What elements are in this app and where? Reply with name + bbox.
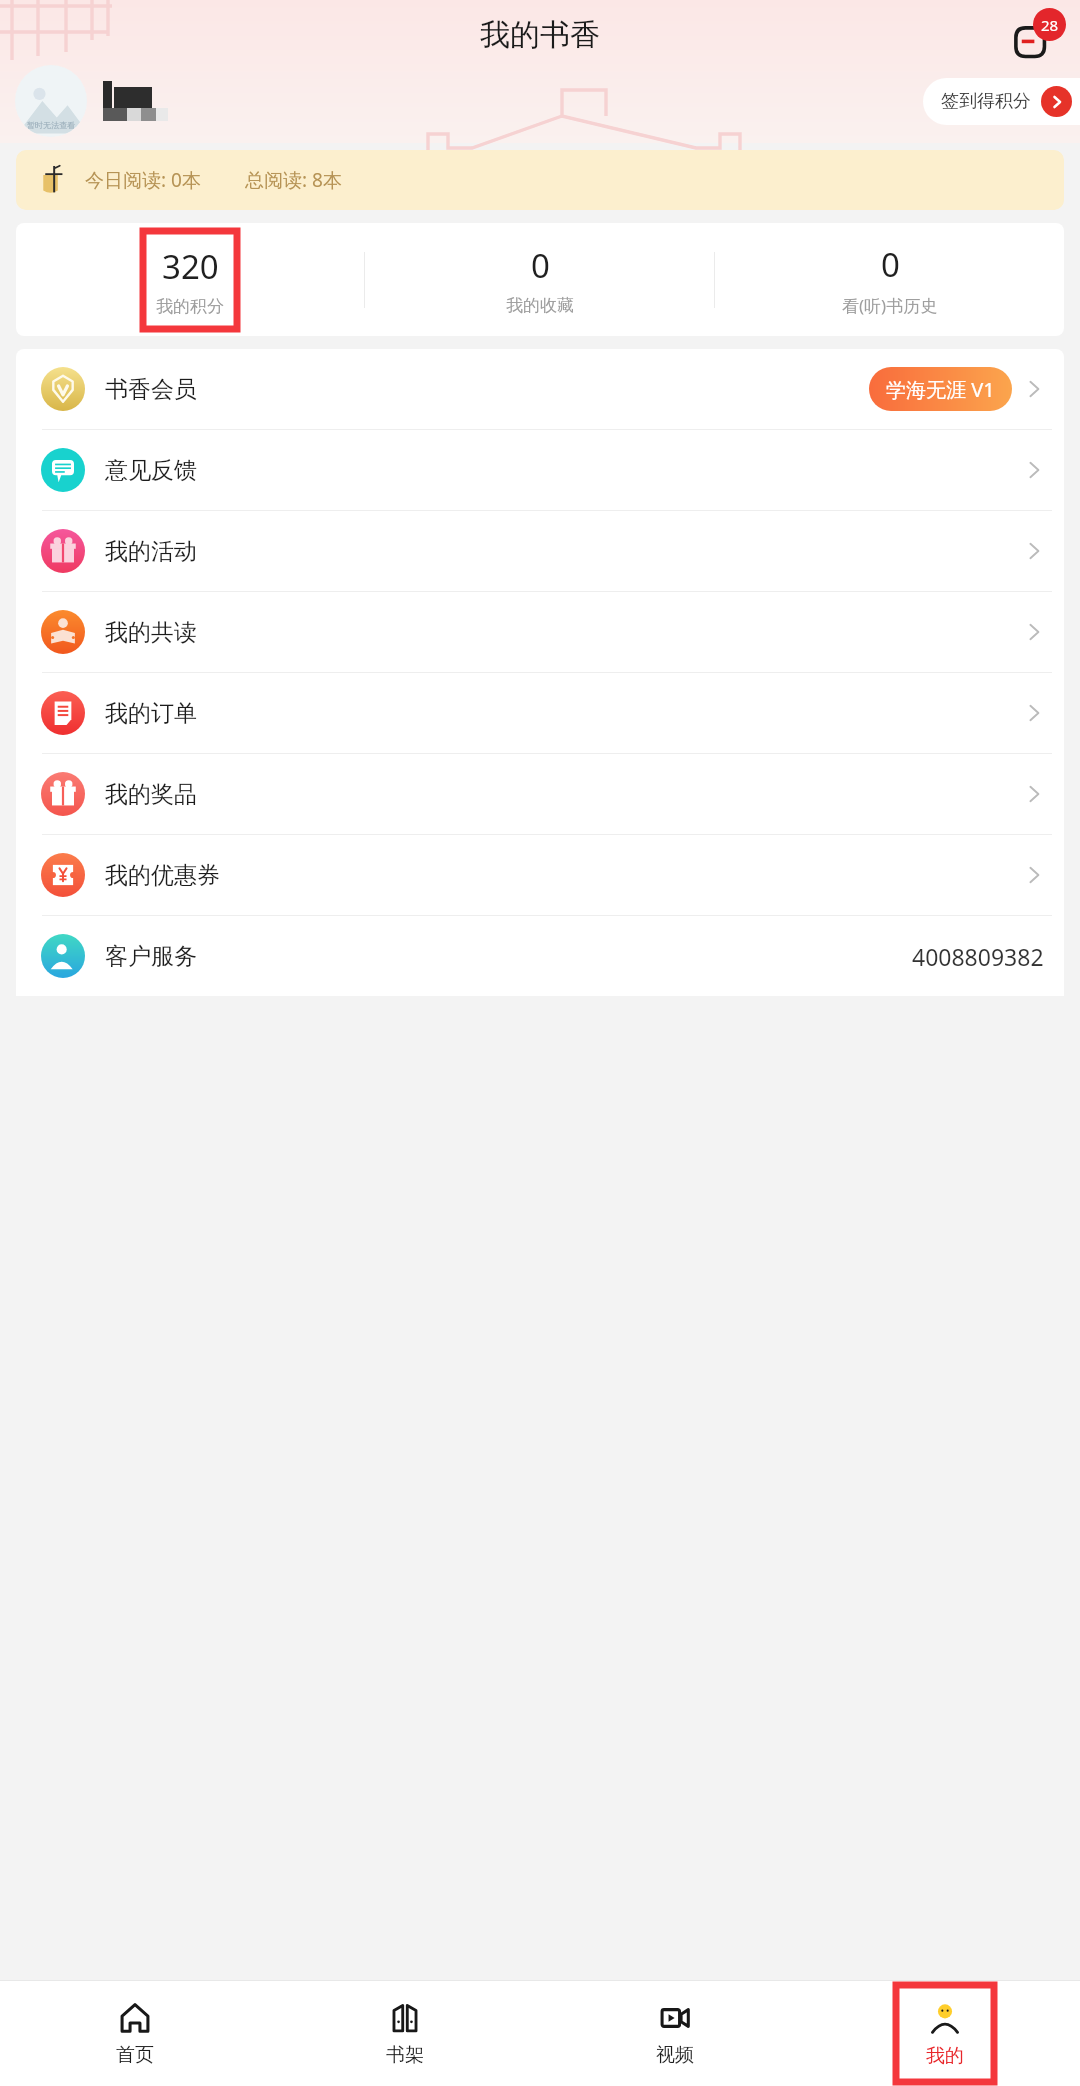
button[interactable]: 意见反馈 (16, 430, 1064, 510)
staticText: 0 (531, 243, 550, 288)
button[interactable]: 今日阅读: 0本 (16, 150, 1064, 210)
button[interactable]: 我的订单 (16, 673, 1064, 753)
staticText: 我的积分 (156, 296, 224, 317)
button[interactable]: 0 (715, 223, 1064, 336)
button[interactable]: 我的 (896, 1985, 994, 2082)
staticText: 我的共读 (105, 618, 197, 647)
staticText: 意见反馈 (105, 456, 197, 485)
staticText: 我的收藏 (506, 295, 574, 316)
staticText: 28 (1041, 15, 1059, 35)
staticText: 签到得积分 (941, 90, 1031, 113)
button[interactable]: 书香会员 (16, 349, 1064, 429)
button[interactable]: 0 (365, 223, 714, 336)
button[interactable]: 我的优惠券 (16, 835, 1064, 915)
staticText: 看(听)书历史 (842, 294, 938, 317)
button[interactable]: 320 (143, 231, 237, 329)
staticText: 学海无涯 V1 (886, 376, 995, 403)
staticText: 视频 (656, 2043, 694, 2067)
button[interactable]: 我的共读 (16, 592, 1064, 672)
staticText: 我的 (926, 2044, 964, 2068)
staticText: 暂时无法查看 (27, 120, 75, 130)
staticText: 0 (881, 242, 900, 287)
button[interactable]: 首页 (0, 1980, 270, 2086)
staticText: 客户服务 (105, 942, 197, 971)
staticText: 我的优惠券 (105, 861, 220, 890)
button[interactable]: 我的奖品 (16, 754, 1064, 834)
staticText: 我的奖品 (105, 780, 197, 809)
button[interactable]: Avatar (15, 65, 87, 137)
button[interactable]: 客户服务 (16, 916, 1064, 996)
staticText: 首页 (116, 2043, 154, 2067)
staticText: 书架 (386, 2043, 424, 2067)
staticText: 320 (162, 244, 219, 289)
staticText: 4008809382 (912, 941, 1044, 972)
staticText: 今日阅读: 0本 (85, 167, 201, 193)
staticText: 总阅读: 8本 (245, 167, 342, 193)
staticText: 我的订单 (105, 699, 197, 728)
staticText: 我的活动 (105, 537, 197, 566)
button[interactable]: 我的活动 (16, 511, 1064, 591)
button[interactable]: Messages, 28 unread (1010, 8, 1066, 64)
button[interactable]: 视频 (540, 1980, 810, 2086)
staticText: 我的书香 (480, 16, 600, 54)
button[interactable]: 书架 (270, 1980, 540, 2086)
staticText: 书香会员 (105, 375, 197, 404)
button[interactable]: 签到得积分 (923, 78, 1080, 125)
